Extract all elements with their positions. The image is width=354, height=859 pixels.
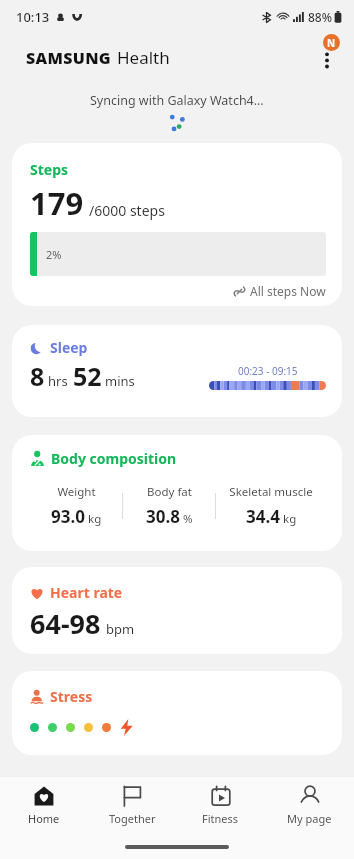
staticText: Syncing with Galaxy Watch4… — [90, 92, 264, 109]
button[interactable]: Stress — [12, 671, 342, 755]
staticText: 2% — [46, 247, 62, 262]
staticText: Weight — [57, 484, 96, 500]
staticText: N — [327, 36, 336, 50]
staticText: bpm — [106, 620, 135, 638]
staticText: kg — [283, 511, 297, 527]
staticText: 88% — [308, 9, 332, 25]
staticText: 64-98 — [30, 605, 101, 642]
staticText: Home — [28, 811, 60, 826]
staticText: Stress — [50, 687, 93, 706]
staticText: SAMSUNG — [26, 47, 111, 69]
staticText: 30.8 — [146, 505, 180, 528]
staticText: Fitness — [202, 811, 239, 826]
staticText: 34.4 — [246, 505, 280, 528]
staticText: Body fat — [147, 484, 192, 500]
staticText: My page — [287, 811, 332, 826]
button[interactable]: Fitness — [176, 777, 265, 835]
staticText: All steps Now — [250, 283, 326, 299]
staticText: /6000 steps — [89, 201, 165, 220]
button[interactable]: Home — [0, 777, 88, 835]
staticText: 00:23 - 09:15 — [238, 364, 298, 378]
button[interactable]: My page — [265, 777, 354, 835]
staticText: Steps — [30, 160, 69, 179]
staticText: 52 — [73, 359, 102, 393]
staticText: Heart rate — [50, 583, 123, 602]
button[interactable]: Sleep — [12, 325, 342, 417]
staticText: 10:13 — [16, 8, 50, 26]
button[interactable]: More options — [310, 40, 344, 74]
staticText: 93.0 — [51, 505, 85, 528]
staticText: Skeletal muscle — [229, 484, 313, 500]
staticText: Health — [117, 46, 170, 69]
staticText: mins — [105, 372, 135, 390]
staticText: Body composition — [51, 449, 177, 468]
staticText: kg — [88, 511, 102, 527]
staticText: % — [183, 511, 193, 527]
button[interactable]: Together — [88, 777, 176, 835]
button[interactable]: Heart rate — [12, 567, 342, 654]
staticText: hrs — [48, 372, 68, 390]
staticText: Sleep — [50, 338, 88, 357]
staticText: 8 — [30, 359, 45, 393]
button[interactable]: Steps — [12, 143, 342, 306]
staticText: Together — [109, 811, 156, 826]
staticText: 179 — [30, 182, 84, 224]
button[interactable]: Body composition — [12, 435, 342, 551]
